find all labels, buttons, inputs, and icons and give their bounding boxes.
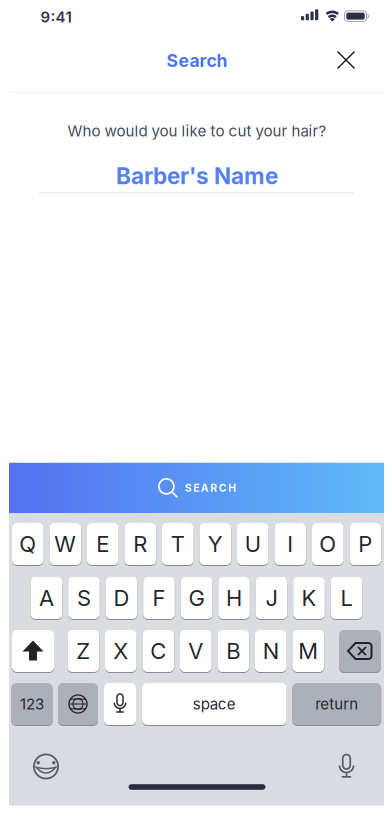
staticText: W xyxy=(54,531,76,557)
staticText: E xyxy=(96,531,109,557)
button[interactable]: W xyxy=(49,523,81,565)
button[interactable]: K xyxy=(293,577,325,619)
button[interactable]: R xyxy=(124,523,156,565)
button[interactable]: A xyxy=(31,577,62,619)
button[interactable]: D xyxy=(106,577,137,619)
staticText: B xyxy=(226,638,240,664)
staticText: Z xyxy=(76,638,90,664)
staticText: O xyxy=(319,531,336,557)
button[interactable]: Shift xyxy=(12,630,54,672)
staticText: SEARCH xyxy=(185,482,236,494)
staticText: space xyxy=(193,695,236,713)
button[interactable]: P xyxy=(349,523,381,565)
staticText: J xyxy=(265,585,277,611)
button[interactable]: Close xyxy=(327,41,364,78)
button[interactable]: M xyxy=(292,630,324,672)
button[interactable]: T xyxy=(162,523,193,565)
staticText: X xyxy=(113,638,128,664)
button[interactable]: C xyxy=(142,630,174,672)
staticText: Search xyxy=(166,50,227,71)
button[interactable]: SEARCH xyxy=(9,463,384,513)
staticText: G xyxy=(188,585,204,611)
button[interactable]: V xyxy=(180,630,211,672)
button[interactable]: space xyxy=(142,683,286,725)
staticText: I xyxy=(287,531,293,557)
button[interactable]: F xyxy=(143,577,175,619)
staticText: Y xyxy=(208,531,223,557)
staticText: T xyxy=(171,531,185,557)
staticText: F xyxy=(152,585,165,611)
button[interactable]: return xyxy=(292,683,381,725)
staticText: P xyxy=(358,531,372,557)
staticText: S xyxy=(77,585,91,611)
button[interactable]: X xyxy=(105,630,136,672)
button[interactable]: Dictate xyxy=(332,749,361,784)
staticText: 9:41 xyxy=(40,8,71,26)
button[interactable]: L xyxy=(331,577,362,619)
button[interactable]: 123 xyxy=(11,683,52,725)
button[interactable]: Emoji xyxy=(27,747,65,785)
staticText: U xyxy=(245,531,261,557)
staticText: M xyxy=(298,638,318,664)
button[interactable]: Y xyxy=(199,523,231,565)
staticText: V xyxy=(188,638,203,664)
staticText: L xyxy=(340,585,352,611)
button[interactable]: I xyxy=(274,523,306,565)
staticText: Who would you like to cut your hair? xyxy=(67,122,326,140)
button[interactable]: Delete xyxy=(339,630,381,672)
button[interactable]: Dictate xyxy=(104,683,136,725)
button[interactable]: E xyxy=(87,523,118,565)
button[interactable]: O xyxy=(312,523,343,565)
staticText: Barber's Name xyxy=(116,163,278,189)
button[interactable]: U xyxy=(237,523,268,565)
staticText: C xyxy=(150,638,166,664)
staticText: return xyxy=(315,695,358,713)
staticText: R xyxy=(133,531,147,557)
staticText: N xyxy=(263,638,279,664)
staticText: A xyxy=(39,585,54,611)
button[interactable]: Z xyxy=(67,630,99,672)
staticText: D xyxy=(113,585,129,611)
staticText: 123 xyxy=(20,695,44,713)
button[interactable]: Q xyxy=(12,523,43,565)
staticText: Q xyxy=(19,531,36,557)
button[interactable]: H xyxy=(218,577,250,619)
button[interactable]: Next keyboard xyxy=(58,683,98,725)
button[interactable]: N xyxy=(255,630,286,672)
staticText: K xyxy=(301,585,316,611)
staticText: H xyxy=(226,585,242,611)
button[interactable]: B xyxy=(217,630,249,672)
button[interactable]: S xyxy=(68,577,100,619)
button[interactable]: J xyxy=(256,577,287,619)
button[interactable]: G xyxy=(181,577,212,619)
